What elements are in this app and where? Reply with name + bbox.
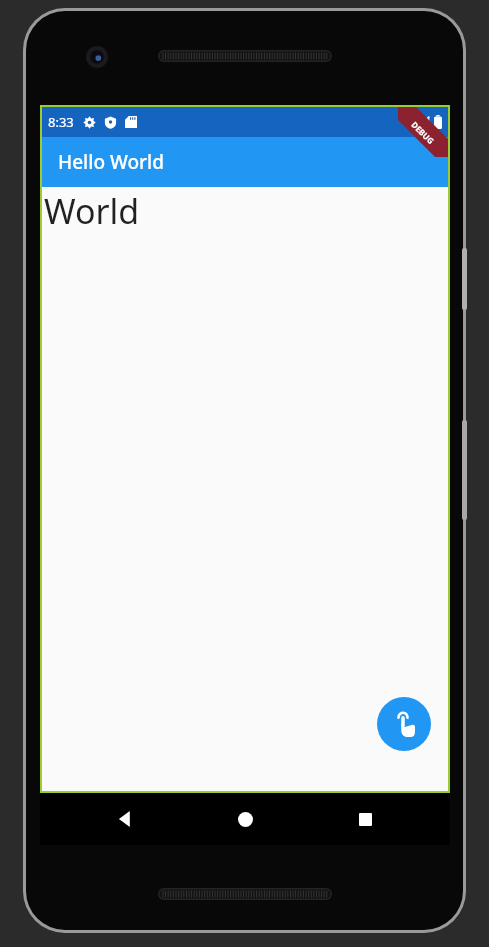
- staticText: World: [44, 188, 140, 234]
- button[interactable]: Home: [210, 793, 280, 845]
- button[interactable]: Recent apps: [330, 793, 400, 845]
- staticText: 8:33: [48, 113, 74, 131]
- button[interactable]: Back: [90, 793, 160, 845]
- staticText: DEBUG: [409, 119, 437, 146]
- button[interactable]: Tap action: [377, 697, 431, 751]
- staticText: Hello World: [58, 149, 164, 175]
